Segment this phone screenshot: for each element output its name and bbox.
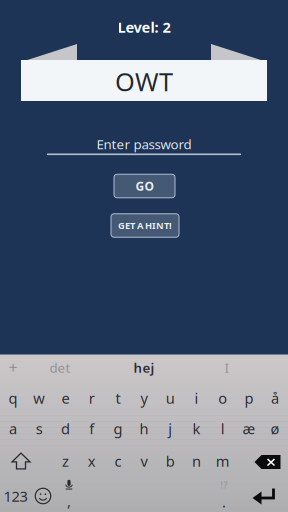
staticText: GET A HINT! — [118, 219, 172, 232]
button[interactable]: p — [236, 383, 262, 413]
button[interactable]: y — [131, 383, 157, 413]
button[interactable]: k — [183, 413, 210, 443]
button[interactable]: Enter — [242, 480, 286, 512]
button[interactable]: d — [52, 413, 79, 443]
button[interactable]: x — [79, 446, 105, 476]
staticText: n — [192, 451, 201, 471]
button[interactable]: c — [105, 446, 131, 476]
button[interactable]: n — [183, 446, 210, 476]
staticText: k — [192, 419, 200, 438]
staticText: hej — [133, 359, 154, 376]
button[interactable]: I — [185, 355, 269, 379]
staticText: ø — [271, 419, 280, 438]
staticText: l — [221, 419, 225, 438]
button[interactable]: w — [26, 383, 52, 413]
staticText: I — [224, 359, 229, 376]
staticText: h — [140, 419, 149, 438]
staticText: j — [168, 419, 172, 438]
button[interactable]: Emoji — [29, 480, 57, 512]
button[interactable]: s — [26, 413, 52, 443]
staticText: f — [89, 419, 94, 438]
button[interactable]: æ — [236, 413, 262, 443]
staticText: Enter password — [96, 135, 191, 153]
button[interactable]: i — [183, 383, 210, 413]
staticText: c — [114, 451, 121, 471]
button[interactable]: + — [0, 355, 28, 379]
staticText: x — [88, 451, 96, 471]
staticText: å — [271, 388, 279, 408]
staticText: y — [141, 388, 148, 408]
button[interactable]: z — [52, 446, 79, 476]
staticText: s — [36, 419, 43, 438]
staticText: g — [113, 419, 122, 438]
staticText: o — [218, 388, 227, 408]
staticText: d — [61, 419, 70, 438]
staticText: det — [49, 359, 70, 376]
staticText: m — [216, 451, 230, 471]
button[interactable]: t — [105, 383, 131, 413]
staticText: , — [67, 491, 71, 511]
staticText: Level: 2 — [117, 17, 170, 37]
staticText: a — [9, 419, 17, 438]
staticText: 123 — [3, 486, 27, 506]
staticText: e — [61, 388, 69, 408]
staticText: p — [244, 388, 253, 408]
staticText: r — [89, 388, 95, 408]
staticText: v — [141, 451, 148, 471]
button[interactable]: o — [210, 383, 236, 413]
button[interactable]: g — [105, 413, 131, 443]
staticText: q — [9, 388, 18, 408]
staticText: OWT — [115, 65, 173, 98]
button[interactable]: Voice input and comma — [55, 479, 83, 511]
button[interactable]: b — [157, 446, 183, 476]
button[interactable]: Shift — [1, 446, 41, 476]
button[interactable]: Backspace — [246, 447, 288, 477]
staticText: u — [166, 388, 175, 408]
staticText: GO — [135, 178, 153, 194]
button[interactable]: det — [20, 355, 100, 379]
button[interactable]: GO — [94, 174, 195, 198]
button[interactable]: a — [0, 413, 26, 443]
button[interactable]: h — [131, 413, 157, 443]
button[interactable]: Period — [210, 479, 238, 511]
button[interactable]: q — [0, 383, 26, 413]
staticText: . — [222, 492, 226, 511]
staticText: + — [8, 357, 17, 378]
button[interactable]: j — [157, 413, 183, 443]
button[interactable]: hej — [102, 355, 186, 379]
staticText: æ — [242, 419, 255, 438]
button[interactable]: r — [79, 383, 105, 413]
button[interactable]: 123 — [0, 480, 32, 512]
button[interactable]: å — [262, 383, 288, 413]
button[interactable]: l — [210, 413, 236, 443]
staticText: !? — [220, 479, 227, 491]
staticText: w — [33, 388, 45, 408]
button[interactable]: f — [79, 413, 105, 443]
staticText: b — [166, 451, 175, 471]
button[interactable]: u — [157, 383, 183, 413]
staticText: t — [115, 388, 120, 408]
button[interactable]: GET A HINT! — [91, 214, 199, 237]
button[interactable]: v — [131, 446, 157, 476]
staticText: i — [194, 388, 198, 408]
staticText: z — [62, 451, 69, 471]
button[interactable]: e — [52, 383, 79, 413]
button[interactable]: m — [210, 446, 236, 476]
button[interactable]: ø — [262, 413, 288, 443]
